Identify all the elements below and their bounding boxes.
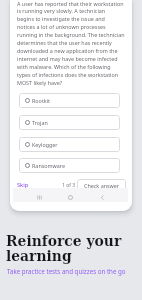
staticText: Ransomware (32, 162, 66, 169)
button[interactable]: Skip (15, 179, 31, 191)
button[interactable]: Rootkit (19, 93, 120, 108)
button[interactable]: Back (97, 192, 108, 202)
staticText: Trojan (32, 119, 48, 126)
button[interactable]: Trojan (19, 115, 120, 130)
button[interactable]: Check answer (77, 179, 126, 191)
staticText: A user has reported that their workstati… (17, 0, 125, 87)
button[interactable]: Keylogger (19, 137, 120, 152)
button[interactable]: Ransomware (19, 158, 120, 173)
staticText: Reinforce your learning (6, 233, 122, 264)
button[interactable]: Home (65, 192, 76, 202)
staticText: Check answer (84, 182, 120, 189)
staticText: Rootkit (32, 97, 51, 104)
button[interactable]: Recents (34, 192, 45, 202)
staticText: Keylogger (32, 141, 58, 148)
staticText: Skip (17, 181, 29, 189)
staticText: 1 of 3 (62, 182, 76, 189)
staticText: Take practice tests and quizzes on the g… (7, 267, 126, 275)
